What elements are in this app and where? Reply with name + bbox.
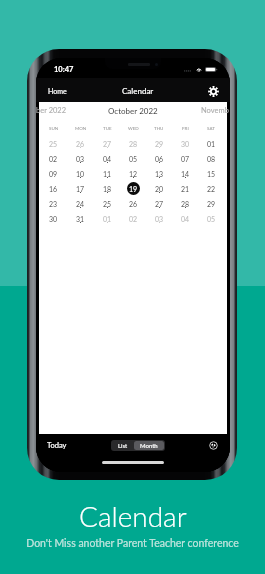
staticText: 07 — [181, 155, 190, 163]
button[interactable]: 03 — [67, 151, 94, 166]
button[interactable]: 01 — [94, 211, 120, 226]
button[interactable]: Today — [45, 438, 69, 453]
button[interactable]: 08 — [198, 151, 224, 166]
staticText: 20 — [155, 185, 164, 193]
staticText: 30 — [181, 140, 190, 148]
staticText: 14 — [181, 170, 190, 178]
button[interactable]: 24 — [67, 196, 94, 211]
staticText: 29 — [155, 140, 164, 148]
staticText: 13 — [155, 170, 164, 178]
button[interactable]: 26 — [120, 196, 146, 211]
staticText: 30 — [49, 215, 58, 223]
staticText: 27 — [103, 140, 112, 148]
staticText: 24 — [76, 200, 85, 208]
button[interactable]: 14 — [172, 166, 198, 181]
button[interactable]: 07 — [172, 151, 198, 166]
button[interactable]: 28 — [172, 196, 198, 211]
staticText: Month — [140, 442, 158, 449]
button[interactable]: 03 — [146, 211, 172, 226]
staticText: 05 — [207, 215, 216, 223]
button[interactable]: 01 — [198, 136, 224, 151]
staticText: 10:47 — [54, 65, 74, 74]
staticText: 12 — [129, 170, 138, 178]
button[interactable]: Time zone globe — [206, 438, 220, 452]
button[interactable]: 25 — [40, 136, 67, 151]
staticText: 17 — [76, 185, 85, 193]
staticText: 03 — [76, 155, 85, 163]
staticText: 27 — [155, 200, 164, 208]
staticText: List — [118, 442, 128, 449]
staticText: 28 — [129, 140, 138, 148]
button[interactable]: 04 — [94, 151, 120, 166]
button[interactable]: 27 — [94, 136, 120, 151]
staticText: 05 — [129, 155, 138, 163]
button[interactable]: 12 — [120, 166, 146, 181]
button[interactable]: 09 — [40, 166, 67, 181]
staticText: Don't Miss another Parent Teacher confer… — [26, 537, 239, 550]
button[interactable]: Month — [134, 441, 164, 450]
staticText: MON — [75, 126, 87, 131]
button[interactable]: 30 — [40, 211, 67, 226]
button[interactable]: 28 — [120, 136, 146, 151]
staticText: 26 — [129, 200, 138, 208]
staticText: 08 — [207, 155, 216, 163]
staticText: 18 — [103, 185, 112, 193]
staticText: 28 — [181, 200, 190, 208]
button[interactable]: 25 — [94, 196, 120, 211]
button[interactable]: 20 — [146, 181, 172, 196]
button[interactable]: Settings — [206, 84, 220, 98]
button[interactable]: 17 — [67, 181, 94, 196]
button[interactable]: 29 — [198, 196, 224, 211]
staticText: 02 — [49, 155, 58, 163]
staticText: 10 — [76, 170, 85, 178]
button[interactable]: 05 — [120, 151, 146, 166]
button[interactable]: Home — [46, 84, 69, 98]
button[interactable]: 21 — [172, 181, 198, 196]
staticText: October 2022 — [108, 106, 158, 116]
button[interactable]: 26 — [67, 136, 94, 151]
button[interactable]: 04 — [172, 211, 198, 226]
button[interactable]: 31 — [67, 211, 94, 226]
staticText: THU — [154, 126, 164, 131]
button[interactable]: 13 — [146, 166, 172, 181]
button[interactable]: 22 — [198, 181, 224, 196]
button[interactable]: 16 — [40, 181, 67, 196]
button[interactable]: 11 — [94, 166, 120, 181]
button[interactable]: 15 — [198, 166, 224, 181]
button[interactable]: 10 — [67, 166, 94, 181]
staticText: Today — [47, 441, 67, 450]
staticText: 11 — [103, 170, 112, 178]
staticText: 01 — [207, 140, 216, 148]
staticText: 04 — [103, 155, 112, 163]
staticText: 31 — [76, 215, 85, 223]
button[interactable]: 27 — [146, 196, 172, 211]
staticText: ber 2022 — [36, 106, 67, 115]
staticText: 26 — [76, 140, 85, 148]
button[interactable]: 05 — [198, 211, 224, 226]
staticText: Home — [48, 87, 67, 95]
button[interactable]: 02 — [40, 151, 67, 166]
button[interactable]: 02 — [120, 211, 146, 226]
button[interactable]: 06 — [146, 151, 172, 166]
staticText: SUN — [49, 126, 59, 131]
button[interactable]: 18 — [94, 181, 120, 196]
staticText: 15 — [207, 170, 216, 178]
button[interactable]: 19 — [120, 181, 146, 196]
staticText: 16 — [49, 185, 58, 193]
button[interactable]: 23 — [40, 196, 67, 211]
staticText: Calendar — [122, 86, 154, 96]
staticText: 23 — [49, 200, 58, 208]
staticText: 04 — [181, 215, 190, 223]
staticText: WED — [128, 126, 139, 131]
button[interactable]: 29 — [146, 136, 172, 151]
staticText: 25 — [49, 140, 58, 148]
button[interactable]: 30 — [172, 136, 198, 151]
staticText: 02 — [129, 215, 138, 223]
staticText: 19 — [129, 185, 138, 193]
staticText: 25 — [103, 200, 112, 208]
staticText: Calendar — [79, 499, 187, 533]
staticText: 09 — [49, 170, 58, 178]
staticText: 01 — [103, 215, 112, 223]
staticText: SAT — [207, 126, 215, 131]
button[interactable]: List — [112, 441, 134, 450]
